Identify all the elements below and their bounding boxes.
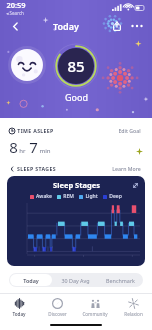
staticText: REM [63, 193, 74, 200]
button[interactable]: Back [7, 18, 23, 34]
button[interactable]: Expand chart [131, 181, 140, 190]
button[interactable]: 30 Day Avg [54, 274, 97, 286]
staticText: Awake [36, 193, 52, 200]
staticText: Relaxion [124, 311, 143, 317]
staticText: Community [82, 311, 108, 317]
button[interactable]: Share [109, 18, 125, 34]
staticText: Sleep Stages [53, 180, 100, 190]
button[interactable]: Relaxion [114, 294, 152, 320]
button[interactable]: Edit Goal [116, 126, 143, 135]
staticText: Good [65, 91, 88, 103]
staticText: Learn More [112, 165, 141, 172]
staticText: ◂ Search [6, 10, 24, 16]
staticText: 7 [29, 137, 38, 157]
button[interactable]: Learn More [110, 164, 143, 173]
button[interactable]: Discover [38, 294, 76, 320]
staticText: 30 Day Avg [61, 277, 90, 284]
staticText: Benchmark [106, 277, 135, 284]
staticText: 20:59 [6, 0, 26, 10]
button[interactable]: Community [76, 294, 114, 320]
staticText: Today [12, 311, 26, 317]
staticText: hr [19, 147, 26, 155]
button[interactable]: Benchmark [99, 274, 142, 286]
staticText: 85 [67, 56, 85, 76]
staticText: min [39, 147, 51, 155]
button[interactable]: Sleep Stages [7, 176, 145, 266]
button[interactable]: More options [129, 18, 145, 34]
staticText: 8 [9, 137, 18, 157]
button[interactable]: Today [0, 294, 38, 320]
staticText: Today [23, 277, 39, 284]
button[interactable]: Today [10, 274, 52, 286]
staticText: SLEEP STAGES [17, 165, 56, 172]
staticText: Deep [109, 193, 122, 200]
staticText: Light [85, 193, 98, 200]
staticText: Edit Goal [118, 127, 141, 134]
staticText: TIME ASLEEP [17, 127, 54, 134]
staticText: Discover [48, 311, 67, 317]
staticText: Today [53, 20, 79, 32]
